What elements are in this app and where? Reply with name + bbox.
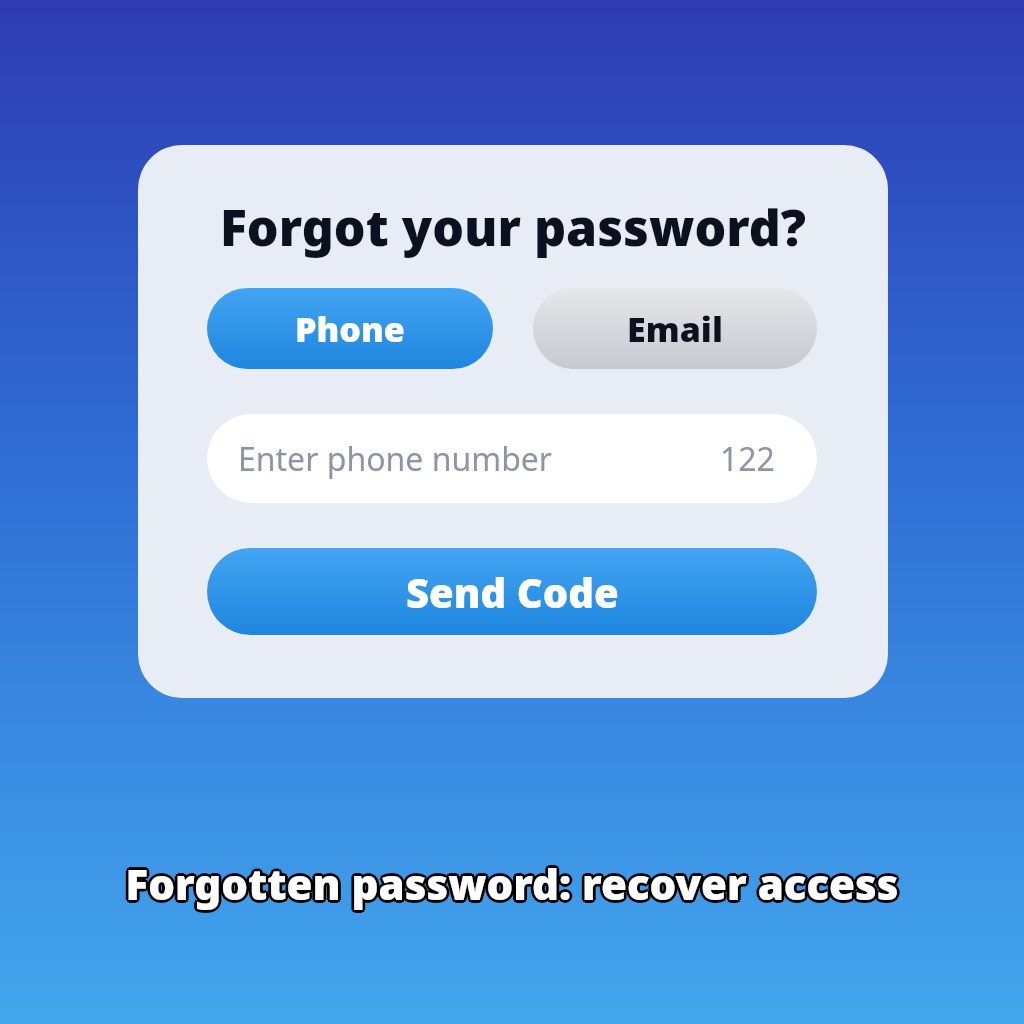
button[interactable]: Send Code [207,548,817,635]
staticText: Forgotten password: recover access [2,853,1024,910]
button[interactable]: Phone [207,288,493,369]
staticText: Forgotten password: recover access [3,855,1024,912]
staticText: Forgotten password: recover access [0,858,1024,915]
staticText: Email [627,306,723,352]
staticText: Phone [295,306,405,352]
staticText: Enter phone number [238,437,553,481]
staticText: Forgotten password: recover access [0,857,1022,914]
button[interactable]: Enter phone number [207,414,817,503]
staticText: 122 [720,437,775,481]
staticText: Forgotten password: recover access [0,852,1024,909]
staticText: Forgotten password: recover access [0,853,1022,910]
staticText: Forgotten password: recover access [0,855,1021,912]
staticText: Forgotten password: recover access [2,857,1024,914]
staticText: Forgot your password? [138,193,888,261]
button[interactable]: Email [533,288,817,369]
staticText: Send Code [406,565,619,619]
staticText: Forgotten password: recover access [0,855,1024,912]
